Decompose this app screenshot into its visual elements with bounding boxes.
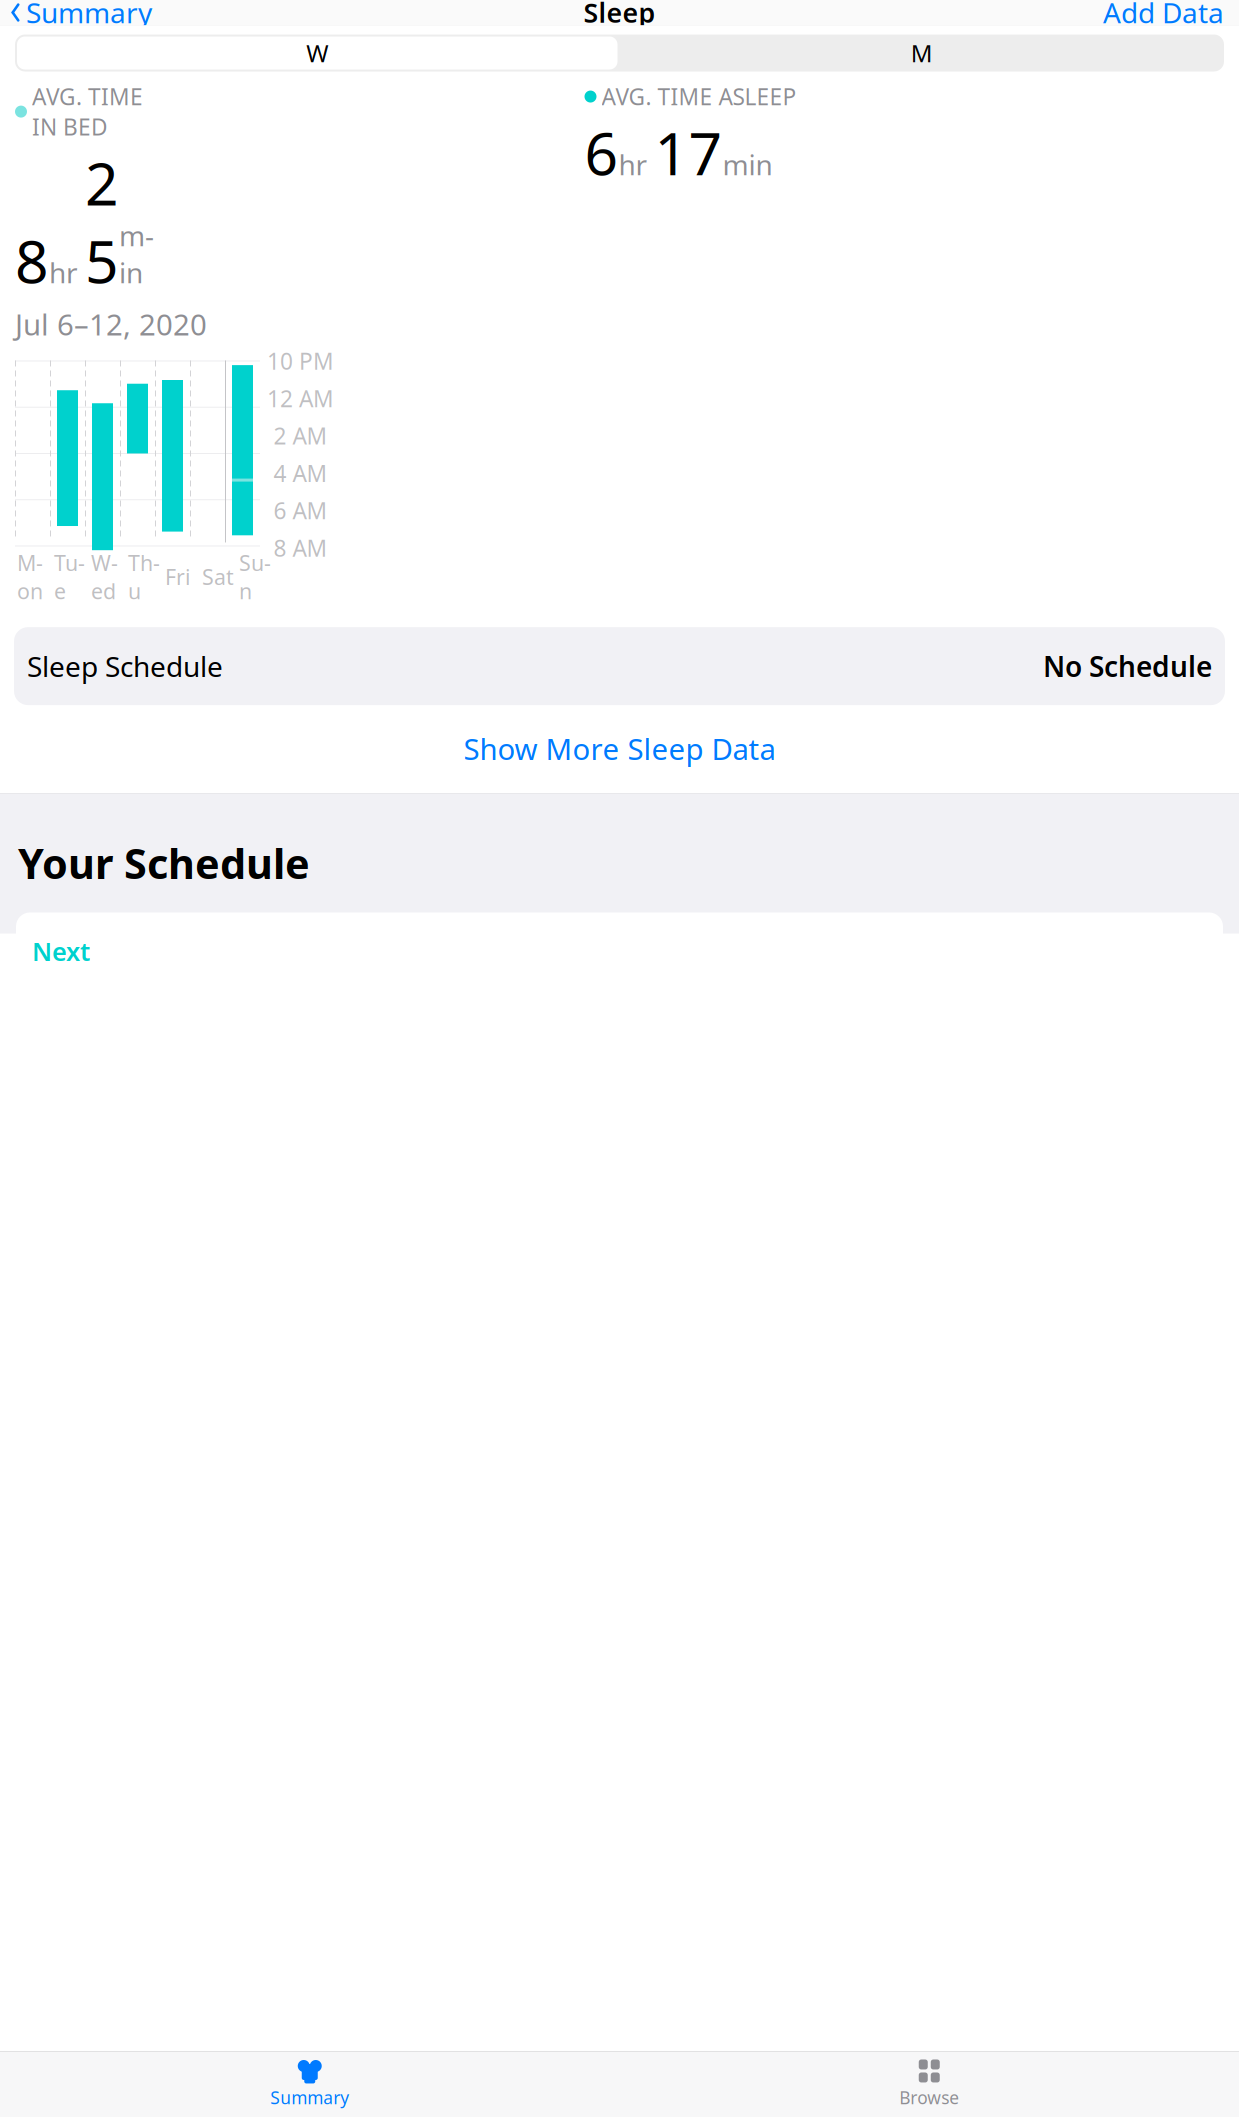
staticText: Mon bbox=[17, 548, 43, 605]
staticText: 25 bbox=[85, 144, 119, 299]
staticText: Fri bbox=[165, 563, 191, 591]
button[interactable]: Summary bbox=[0, 2052, 619, 2117]
button[interactable]: W bbox=[15, 34, 619, 71]
staticText: Next bbox=[32, 934, 90, 968]
button[interactable]: Show More Sleep Data bbox=[0, 718, 1239, 779]
staticText: min bbox=[119, 217, 154, 291]
staticText: Browse bbox=[899, 2086, 959, 2109]
staticText: 17 bbox=[654, 114, 722, 191]
staticText: Sun bbox=[239, 548, 271, 605]
staticText: Your Schedule bbox=[18, 836, 310, 890]
staticText: Wed bbox=[91, 548, 118, 605]
staticText: 6 AM bbox=[273, 495, 327, 526]
staticText: W bbox=[306, 37, 328, 69]
staticText: Show More Sleep Data bbox=[463, 729, 775, 768]
staticText: Sleep Schedule bbox=[27, 647, 223, 685]
staticText: Tue bbox=[54, 548, 85, 605]
staticText: Summary bbox=[270, 2086, 349, 2109]
staticText: 12 AM bbox=[267, 383, 334, 413]
staticText: 4 AM bbox=[273, 458, 327, 488]
staticText: Add Data bbox=[1103, 0, 1224, 31]
staticText: 2 AM bbox=[273, 421, 327, 451]
staticText: Jul 6–12, 2020 bbox=[15, 304, 207, 343]
staticText: AVG. TIME IN BED bbox=[32, 81, 143, 142]
button[interactable]: Add Data bbox=[1103, 0, 1239, 35]
staticText: Thu bbox=[128, 548, 160, 605]
staticText: Sat bbox=[202, 563, 234, 591]
button[interactable]: M bbox=[619, 34, 1224, 71]
staticText: Sleep bbox=[583, 0, 655, 30]
staticText: min bbox=[722, 146, 772, 183]
staticText: 6 bbox=[584, 114, 618, 191]
staticText: Summary bbox=[26, 0, 152, 31]
staticText: hr bbox=[618, 146, 647, 183]
staticText: hr bbox=[49, 254, 78, 291]
button[interactable]: Sleep Schedule bbox=[0, 627, 1239, 705]
staticText: 8 AM bbox=[273, 533, 327, 563]
staticText: 10 PM bbox=[267, 346, 334, 376]
staticText: AVG. TIME ASLEEP bbox=[601, 81, 796, 112]
button[interactable]: Browse bbox=[619, 2052, 1239, 2117]
button[interactable]: Summary bbox=[0, 0, 152, 35]
staticText: M bbox=[911, 37, 933, 69]
staticText: 8 bbox=[15, 222, 49, 299]
staticText: No Schedule bbox=[1043, 647, 1212, 685]
